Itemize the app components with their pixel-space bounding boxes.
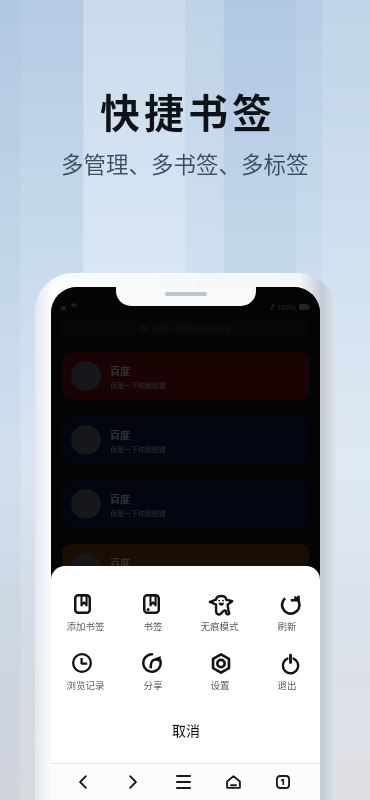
button[interactable]: Home	[212, 766, 254, 798]
staticText: 添加书签	[66, 619, 105, 631]
button[interactable]: 百度	[62, 608, 309, 656]
staticText: 退出	[277, 678, 297, 690]
staticText: 百度一下你就知道	[110, 380, 166, 390]
button[interactable]: 取消	[51, 720, 320, 738]
button[interactable]: 退出	[253, 653, 320, 690]
staticText: 分享	[143, 678, 163, 690]
button[interactable]: 百度	[62, 672, 309, 720]
staticText: 百度	[110, 491, 130, 505]
button[interactable]: Forward	[112, 766, 154, 798]
staticText: 刷新	[277, 619, 297, 631]
staticText: 多管理、多书签、多标签	[61, 147, 309, 180]
button[interactable]: 书签	[119, 594, 186, 631]
button[interactable]: 刷新	[253, 594, 320, 631]
staticText: 设置	[210, 678, 230, 690]
staticText: 快捷书签	[100, 82, 276, 140]
button[interactable]: Tabs	[262, 766, 304, 798]
button[interactable]: 百度	[62, 416, 309, 464]
staticText: 百度一下你就知道	[110, 508, 166, 518]
staticText: 百度	[110, 363, 130, 377]
staticText: 请输入搜索内容或网址	[151, 323, 231, 335]
button[interactable]: 百度	[62, 352, 309, 400]
staticText: 浏览记录	[66, 678, 105, 690]
button[interactable]: 百度	[62, 544, 309, 592]
button[interactable]: 添加书签	[51, 594, 119, 631]
staticText: 100%	[277, 302, 297, 312]
staticText: 百度	[110, 427, 130, 441]
button[interactable]: Back	[62, 766, 104, 798]
staticText: 书签	[143, 619, 163, 631]
button[interactable]: Menu	[162, 766, 204, 798]
staticText: 取消	[172, 720, 200, 738]
button[interactable]: 无痕模式	[186, 594, 253, 631]
staticText: 百度	[110, 555, 130, 569]
button[interactable]: 设置	[186, 653, 253, 690]
button[interactable]: 分享	[119, 653, 186, 690]
staticText: 无痕模式	[200, 619, 239, 631]
staticText: 百度一下你就知道	[110, 444, 166, 454]
button[interactable]: 百度	[62, 480, 309, 528]
button[interactable]: 浏览记录	[51, 653, 119, 690]
